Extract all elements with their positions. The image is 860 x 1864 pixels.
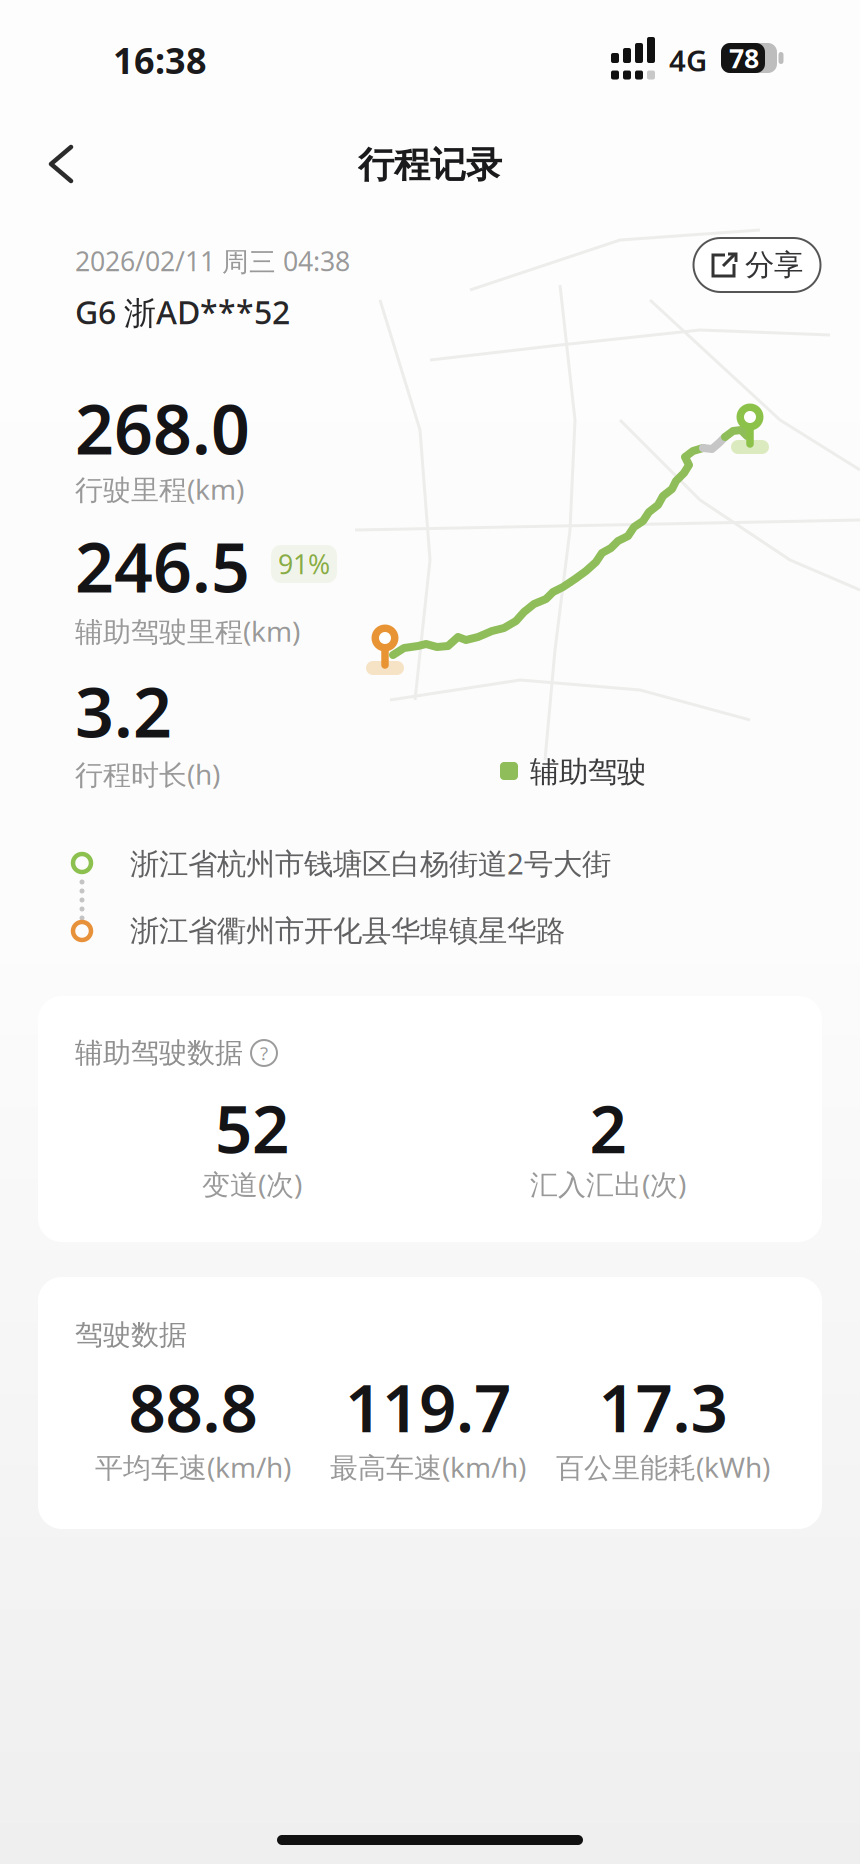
button[interactable]: Back (45, 143, 79, 185)
staticText: 辅助驾驶 (530, 754, 646, 790)
staticText: 分享 (745, 247, 803, 283)
staticText: ? (260, 1041, 268, 1065)
staticText: 最高车速(km/h) (330, 1448, 526, 1486)
staticText: 16:38 (113, 36, 207, 84)
staticText: 2 (589, 1085, 626, 1171)
staticText: 浙江省杭州市钱塘区白杨街道2号大街 (130, 843, 611, 882)
button[interactable]: 分享 (693, 238, 820, 292)
staticText: 辅助驾驶里程(km) (75, 612, 300, 650)
staticText: 2026/02/11 周三 04:38 (75, 243, 350, 279)
staticText: 4G (669, 40, 707, 79)
staticText: 汇入汇出(次) (530, 1165, 686, 1203)
staticText: 268.0 (75, 383, 250, 473)
staticText: 246.5 (75, 521, 250, 611)
staticText: 52 (215, 1085, 289, 1171)
staticText: 91% (278, 546, 330, 582)
staticText: 88.8 (128, 1364, 257, 1450)
button[interactable]: Help (251, 1040, 277, 1066)
staticText: 变道(次) (202, 1165, 302, 1203)
staticText: 行驶里程(km) (75, 470, 244, 508)
staticText: 驾驶数据 (75, 1318, 187, 1352)
staticText: 辅助驾驶数据 (75, 1036, 243, 1070)
staticText: 17.3 (598, 1364, 727, 1450)
staticText: 119.7 (345, 1364, 511, 1450)
staticText: 3.2 (75, 666, 172, 756)
staticText: 行程记录 (358, 143, 502, 187)
staticText: 78 (729, 40, 759, 76)
staticText: 浙江省衢州市开化县华埠镇星华路 (130, 913, 565, 949)
staticText: 百公里能耗(kWh) (556, 1448, 770, 1486)
staticText: 平均车速(km/h) (95, 1448, 291, 1486)
staticText: G6 浙AD***52 (75, 291, 290, 333)
staticText: 行程时长(h) (75, 755, 220, 793)
